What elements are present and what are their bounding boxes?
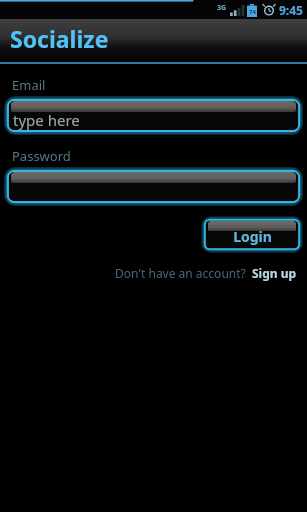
staticText: type here (13, 110, 80, 130)
button[interactable]: type here (6, 98, 301, 133)
staticText: Login (233, 227, 272, 246)
staticText: Don't have an account? (115, 265, 246, 281)
button[interactable]: Login (203, 218, 301, 251)
staticText: Email (12, 76, 46, 94)
button[interactable] (6, 169, 301, 204)
button[interactable]: Sign up (252, 265, 297, 281)
staticText: Socialize (10, 23, 109, 54)
staticText: 74 (249, 8, 256, 16)
staticText: Password (12, 147, 71, 165)
staticText: Sign up (252, 265, 297, 281)
staticText: 9:45 (279, 2, 303, 18)
staticText: 3G (217, 3, 227, 13)
